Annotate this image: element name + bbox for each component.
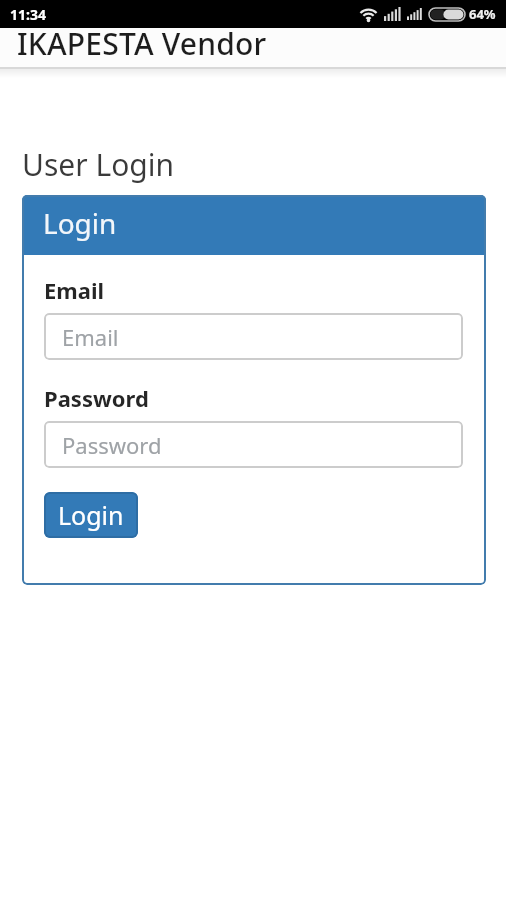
staticText: 11:34: [10, 5, 46, 24]
staticText: Email: [44, 275, 105, 305]
button[interactable]: Password: [44, 421, 463, 468]
staticText: Login: [58, 498, 124, 532]
staticText: Password: [62, 430, 162, 460]
button[interactable]: Login: [44, 492, 138, 538]
button[interactable]: Email: [44, 313, 463, 360]
staticText: Login: [43, 204, 117, 242]
staticText: Email: [62, 322, 119, 352]
staticText: 64%: [469, 5, 496, 23]
staticText: Password: [44, 383, 149, 413]
staticText: User Login: [22, 144, 175, 185]
staticText: IKAPESTA Vendor: [17, 23, 267, 62]
